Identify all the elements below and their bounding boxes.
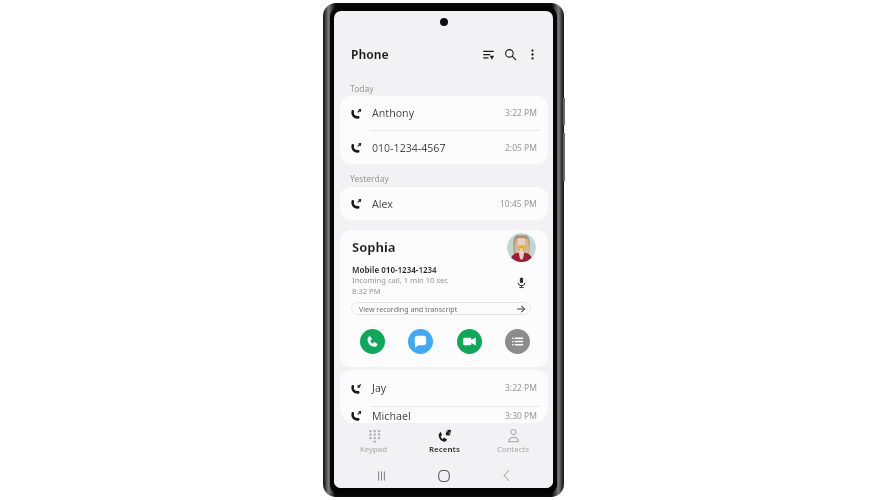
staticText: Alex — [372, 197, 393, 211]
button[interactable]: Jay — [340, 370, 548, 406]
button[interactable]: Michael — [340, 407, 548, 424]
button[interactable]: Recents — [416, 423, 472, 463]
staticText: 3:22 PM — [505, 382, 537, 394]
button[interactable]: Alex — [340, 187, 548, 220]
staticText: 8:32 PM — [352, 286, 381, 296]
button[interactable]: Recent apps — [365, 463, 397, 488]
button[interactable]: Details — [505, 329, 530, 354]
staticText: 010-1234-4567 — [372, 141, 446, 155]
button[interactable]: Call — [360, 329, 385, 354]
button[interactable]: Message — [408, 329, 433, 354]
staticText: View recording and transcript — [359, 304, 458, 314]
staticText: Sophia — [352, 238, 396, 256]
button[interactable]: Keypad — [346, 423, 402, 463]
button[interactable]: Voice recording — [514, 275, 528, 289]
staticText: 2:05 PM — [505, 142, 537, 154]
button[interactable]: 010-1234-4567 — [340, 131, 548, 164]
button[interactable]: Anthony — [340, 96, 548, 130]
staticText: Recents — [429, 444, 460, 455]
button[interactable]: More options — [523, 45, 541, 63]
button[interactable]: Back — [490, 463, 522, 488]
staticText: 10:45 PM — [500, 198, 537, 210]
button[interactable]: Contacts — [485, 423, 541, 463]
staticText: Incoming call, 1 min 10 sec — [352, 275, 449, 285]
button[interactable]: Sophia photo — [507, 233, 536, 262]
staticText: Jay — [372, 381, 387, 395]
button[interactable]: Home — [428, 463, 460, 488]
button[interactable]: Sort — [479, 45, 497, 63]
staticText: 3:30 PM — [505, 410, 537, 422]
staticText: Keypad — [360, 444, 388, 455]
button[interactable]: Video call — [457, 329, 482, 354]
button[interactable]: Search — [501, 45, 519, 63]
staticText: Anthony — [372, 106, 415, 120]
staticText: Contacts — [497, 444, 529, 455]
staticText: Yesterday — [350, 173, 389, 185]
staticText: Mobile 010-1234-1234 — [352, 264, 437, 275]
button[interactable]: View recording and transcript — [351, 302, 531, 315]
staticText: Phone — [351, 46, 389, 62]
staticText: Michael — [372, 409, 411, 423]
staticText: Today — [350, 83, 374, 95]
staticText: 3:22 PM — [505, 107, 537, 119]
